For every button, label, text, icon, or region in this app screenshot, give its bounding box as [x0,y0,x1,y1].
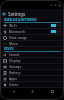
staticText: Bluetooth [9,29,25,34]
button[interactable]: Storage [0,64,64,70]
button[interactable]: Recent apps [45,88,59,95]
button[interactable]: Home [25,88,39,95]
staticText: Users [9,82,19,87]
button[interactable]: Apps [0,76,64,82]
staticText: Sound [9,52,20,57]
staticText: Data usage [9,35,28,40]
button[interactable]: Back [6,88,20,95]
staticText: Apps [9,76,17,81]
button[interactable]: Wi-Fi [0,23,64,29]
button[interactable]: Data usage [0,35,64,41]
button[interactable]: Battery [0,70,64,76]
staticText: WIRELESS & NETWORKS [4,18,37,22]
staticText: Wi-Fi [9,23,17,28]
button[interactable]: Display [0,58,64,64]
staticText: Display [9,58,21,63]
button[interactable]: Bluetooth [0,29,64,35]
staticText: Storage [9,64,22,69]
staticText: DEVICE [4,47,14,51]
button[interactable]: Sound [0,52,64,58]
button[interactable]: More... [0,41,64,47]
staticText: Battery [9,70,21,75]
button[interactable]: Users [0,82,64,88]
staticText: More... [9,41,21,46]
button[interactable]: Settings [0,9,64,18]
staticText: Settings [8,11,26,17]
